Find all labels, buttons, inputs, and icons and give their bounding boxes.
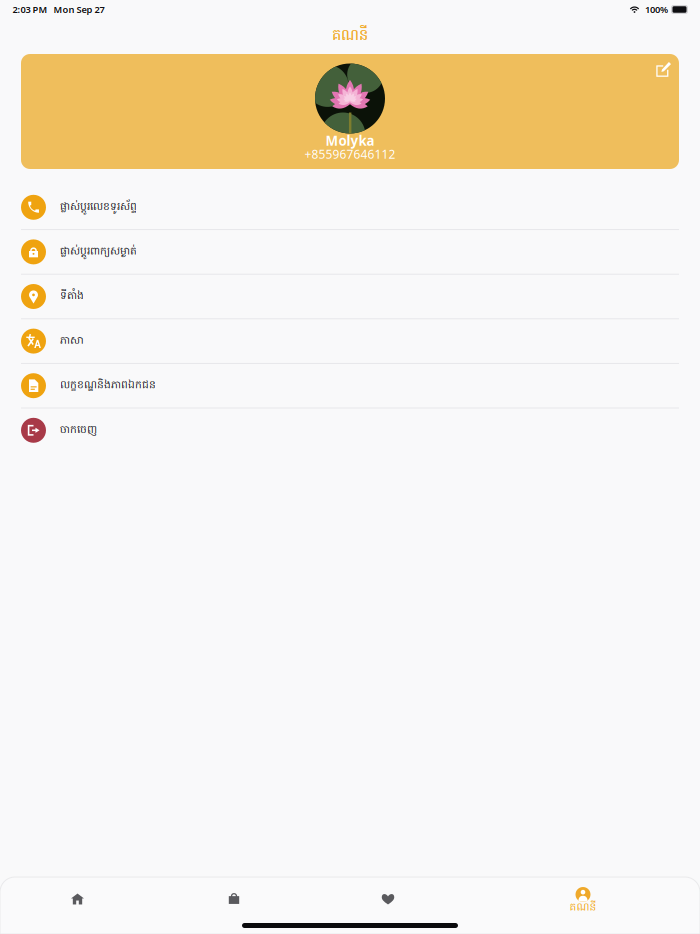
staticText: 100% bbox=[645, 3, 668, 16]
staticText: ភាសា bbox=[60, 333, 83, 349]
staticText: Molyka bbox=[325, 132, 374, 149]
button[interactable]: ភាសា bbox=[0, 319, 700, 364]
button[interactable]: Home bbox=[0, 881, 156, 917]
button[interactable]: ចាកចេញ bbox=[0, 408, 700, 453]
staticText: លក្ខខណ្ឌនិងភាពឯកជន bbox=[60, 378, 156, 393]
staticText: គណនី bbox=[569, 900, 596, 916]
staticText: +855967646112 bbox=[304, 146, 395, 162]
staticText: ផ្លាស់ប្ដូរលេខទូរស័ព្ទ bbox=[60, 200, 137, 215]
staticText: ចាកចេញ bbox=[60, 423, 97, 438]
button[interactable]: ផ្លាស់ប្ដូរលេខទូរស័ព្ទ bbox=[0, 185, 700, 230]
button[interactable]: Edit profile bbox=[648, 54, 679, 85]
button[interactable]: ផ្លាស់ប្ដូរពាក្យសម្ងាត់ bbox=[0, 230, 700, 275]
button[interactable]: Favorites bbox=[312, 881, 466, 917]
button[interactable]: លក្ខខណ្ឌនិងភាពឯកជន bbox=[0, 364, 700, 408]
staticText: 2:03 PM bbox=[12, 3, 47, 16]
button[interactable]: ទីតាំង bbox=[0, 275, 700, 319]
staticText: ផ្លាស់ប្ដូរពាក្យសម្ងាត់ bbox=[60, 244, 137, 259]
staticText: Mon Sep 27 bbox=[53, 3, 104, 16]
staticText: ទីតាំង bbox=[60, 289, 84, 304]
button[interactable]: Shop bbox=[156, 881, 312, 917]
staticText: គណនី bbox=[332, 26, 368, 47]
button[interactable]: គណនី bbox=[505, 881, 661, 917]
